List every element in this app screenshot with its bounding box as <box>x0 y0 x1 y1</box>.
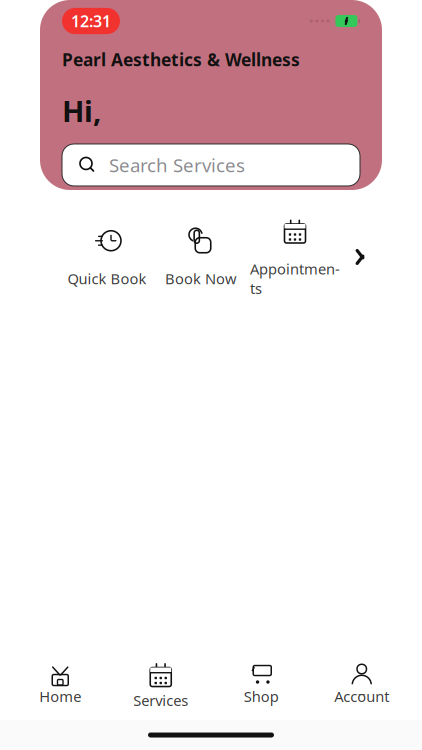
button[interactable]: Services <box>110 655 211 714</box>
staticText: Quick Book <box>67 269 146 288</box>
button[interactable]: More actions <box>342 231 378 283</box>
button[interactable]: Search Services <box>62 144 360 186</box>
staticText: Search Services <box>109 153 245 177</box>
staticText: Account <box>334 686 389 706</box>
staticText: Pearl Aesthetics & Wellness <box>62 48 300 71</box>
staticText: Hi, <box>62 91 101 130</box>
staticText: Home <box>39 686 81 706</box>
staticText: Book Now <box>165 269 237 288</box>
button[interactable]: Appointments <box>248 212 342 302</box>
staticText: Services <box>133 690 188 710</box>
button[interactable]: Book Now <box>154 222 248 292</box>
staticText: Appointments <box>250 259 340 298</box>
staticText: Shop <box>244 686 279 706</box>
button[interactable]: Quick Book <box>60 222 154 292</box>
staticText: 12:31 <box>71 10 111 32</box>
button[interactable]: Home <box>10 659 110 710</box>
button[interactable]: Account <box>311 659 412 710</box>
button[interactable]: Shop <box>211 659 311 710</box>
